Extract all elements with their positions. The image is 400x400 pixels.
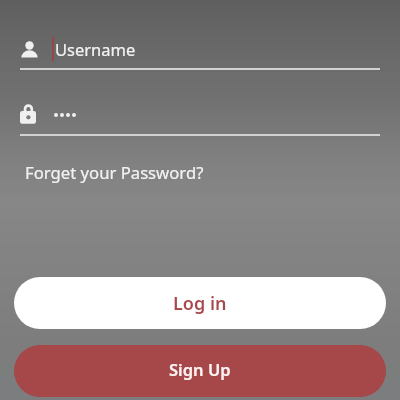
other: Password [20, 104, 36, 124]
other: User [21, 41, 38, 58]
staticText: Log in [173, 291, 227, 316]
button[interactable]: Sign Up [14, 345, 386, 397]
staticText: Username [55, 38, 136, 60]
staticText: Forget your Password? [25, 161, 204, 184]
button[interactable]: Password [20, 104, 380, 124]
button[interactable]: Forget your Password? [25, 161, 204, 184]
staticText: Sign Up [169, 358, 231, 380]
button[interactable]: User [21, 37, 380, 61]
button[interactable]: Log in [14, 277, 386, 329]
